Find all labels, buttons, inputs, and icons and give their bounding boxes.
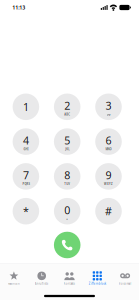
button[interactable]: * — [13, 198, 39, 224]
staticText: 8 — [64, 168, 70, 182]
staticText: Kontakte — [63, 282, 75, 285]
staticText: GHI — [23, 147, 28, 151]
staticText: 0 — [64, 203, 70, 217]
button[interactable]: Ziffernblock — [83, 264, 111, 292]
button[interactable]: Voicemail — [111, 264, 139, 292]
staticText: Anrufliste — [35, 282, 49, 285]
button[interactable]: 0 — [54, 198, 80, 224]
staticText: * — [23, 204, 29, 218]
staticText: 2 — [64, 98, 70, 113]
button[interactable]: 5 — [54, 128, 80, 155]
staticText: JKL — [65, 147, 69, 151]
staticText: WXYZ — [104, 182, 113, 186]
staticText: 5 — [64, 133, 70, 147]
button[interactable]: Anrufliste — [28, 264, 56, 292]
button[interactable]: # — [95, 198, 122, 224]
staticText: TUV — [64, 182, 70, 186]
staticText: # — [105, 204, 112, 218]
staticText: ABC — [64, 113, 70, 116]
button[interactable]: 8 — [54, 163, 80, 190]
button[interactable]: 6 — [95, 128, 122, 155]
button[interactable]: 4 — [13, 128, 39, 155]
button[interactable]: Call — [54, 232, 80, 258]
staticText: 9 — [105, 168, 111, 182]
staticText: 6 — [105, 133, 111, 147]
staticText: DEF — [106, 113, 110, 116]
button[interactable]: Favoriten — [0, 264, 28, 292]
button[interactable]: 9 — [95, 163, 122, 190]
staticText: 7 — [23, 168, 29, 182]
staticText: Voicemail — [119, 282, 132, 285]
staticText: 3 — [105, 98, 111, 113]
staticText: PQRS — [22, 182, 29, 186]
button[interactable]: 7 — [13, 163, 39, 190]
button[interactable]: 3 — [95, 93, 122, 120]
button[interactable]: 1 — [13, 93, 39, 120]
staticText: 4 — [23, 133, 29, 147]
button[interactable]: 2 — [54, 93, 80, 120]
staticText: Favoriten — [8, 282, 20, 285]
staticText: Ziffernblock — [89, 282, 106, 285]
staticText: MNO — [105, 147, 111, 151]
button[interactable]: Kontakte — [56, 264, 83, 292]
staticText: 1 — [23, 100, 29, 114]
staticText: 11:13 — [12, 4, 25, 11]
staticText: + — [66, 217, 68, 221]
